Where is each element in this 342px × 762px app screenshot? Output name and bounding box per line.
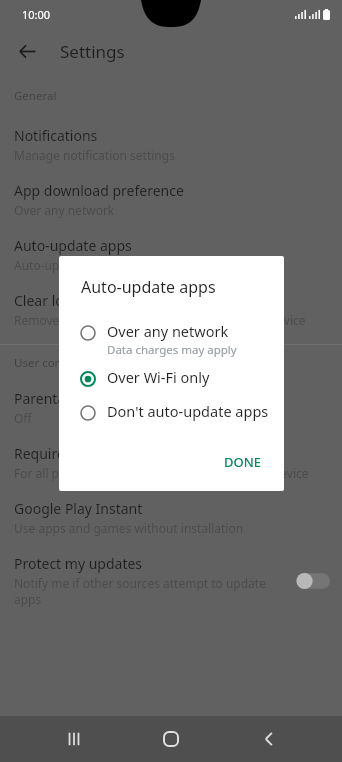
staticText: Auto-update apps — [14, 236, 132, 255]
button[interactable]: Require authentication for purchases — [0, 436, 342, 491]
button[interactable]: Over Wi-Fi only — [59, 362, 284, 396]
staticText: Off — [14, 410, 32, 426]
staticText: Protect my updates — [14, 554, 143, 573]
staticText: Use apps and games without installation — [14, 520, 244, 536]
staticText: Manage notification settings — [14, 147, 175, 163]
button[interactable]: Clear local search history — [0, 283, 342, 338]
staticText: Over any network — [14, 202, 115, 218]
staticText: 10:00 — [22, 7, 51, 22]
staticText: App download preference — [14, 181, 184, 200]
button[interactable]: Protect my updates — [0, 546, 342, 617]
staticText: DONE — [224, 453, 262, 471]
button[interactable]: Back — [245, 716, 293, 762]
staticText: Google Play Instant — [14, 499, 143, 518]
staticText: Parental controls — [14, 389, 126, 408]
staticText: Require authentication for purchases — [14, 444, 258, 463]
button[interactable]: DONE — [216, 447, 270, 477]
staticText: Auto-update apps over Wi-Fi only — [14, 257, 201, 273]
staticText: Auto-update apps — [81, 276, 216, 298]
staticText: Clear local search history — [14, 291, 178, 310]
staticText: Removes search queries you've made on th… — [14, 312, 306, 328]
button[interactable]: Auto-update apps — [0, 228, 342, 283]
staticText: Data charges may apply — [107, 342, 237, 358]
staticText: Over Wi-Fi only — [107, 367, 210, 387]
button[interactable]: Don't auto-update apps — [59, 396, 284, 430]
staticText: For all purchases through Google Play on… — [14, 465, 309, 481]
staticText: Over any network — [107, 321, 229, 341]
staticText: Settings — [60, 40, 125, 63]
staticText: Don't auto-update apps — [107, 401, 269, 421]
button[interactable]: Over any network — [59, 316, 284, 362]
staticText: General — [14, 88, 57, 104]
button[interactable]: Notifications — [0, 118, 342, 173]
staticText: User controls — [14, 355, 86, 371]
button[interactable]: Home — [147, 716, 195, 762]
staticText: Notify me if other sources attempt to up… — [14, 575, 288, 607]
staticText: Notifications — [14, 126, 98, 145]
button[interactable]: Google Play Instant — [0, 491, 342, 546]
button[interactable]: Recents — [50, 716, 98, 762]
button[interactable]: Parental controls — [0, 381, 342, 436]
button[interactable]: App download preference — [0, 173, 342, 228]
button[interactable]: Protect my updates toggle — [296, 571, 330, 591]
button[interactable]: Back — [10, 34, 44, 68]
